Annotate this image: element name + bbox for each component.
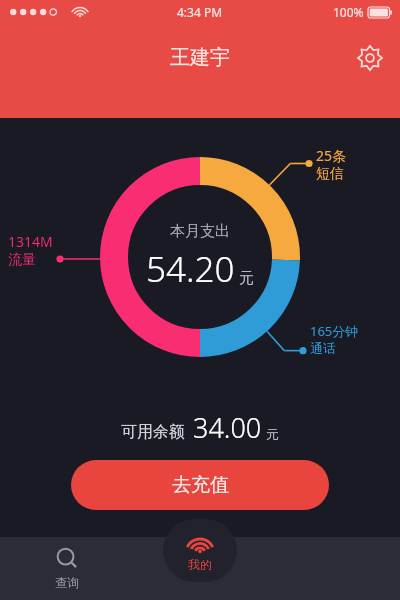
button[interactable]: 查询 [0,537,134,600]
staticText: 25条 [316,146,347,165]
staticText: 元 [266,426,279,442]
staticText: 54.20 [146,245,235,293]
staticText: 100% [333,4,364,20]
staticText: 去充值 [172,473,229,497]
staticText: 查询 [55,575,79,590]
button[interactable]: 去充值 [71,460,329,510]
staticText: 34.00 [193,409,262,446]
button[interactable] [134,537,267,600]
staticText: 1314M [8,232,53,251]
staticText: 元 [239,269,254,288]
staticText: 通话 [310,340,336,356]
staticText: 短信 [316,165,344,183]
staticText: 本月支出 [170,222,230,241]
staticText: 4:34 PM [177,4,223,20]
staticText: 165分钟 [310,322,359,340]
staticText: 我的 [188,557,212,572]
staticText: 可用余额 [121,422,185,442]
staticText: 王建宇 [170,45,230,70]
button[interactable]: Settings [348,36,392,80]
staticText: 流量 [8,251,36,269]
button[interactable]: 我的 [165,521,235,584]
